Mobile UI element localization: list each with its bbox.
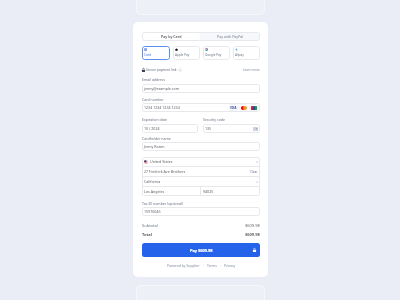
staticText: Jenny Rosen (144, 144, 165, 149)
staticText: Total (142, 232, 245, 237)
staticText: Alipay (235, 53, 244, 57)
button[interactable]: 10 / 2024 (142, 124, 198, 133)
staticText: · (217, 263, 224, 268)
staticText: 94025 (203, 189, 214, 194)
button[interactable]: Privacy (224, 263, 236, 268)
staticText: 135 (205, 126, 253, 131)
staticText: Tax ID number (optional) (142, 201, 183, 206)
staticText: 10 / 2024 (144, 126, 160, 131)
staticText: $609.98 (245, 223, 260, 228)
button[interactable]: Pay with PayPal (201, 32, 260, 41)
staticText: 15976046 (144, 209, 161, 214)
staticText: Google Pay (205, 53, 222, 57)
staticText: United States (150, 159, 256, 164)
staticText: VISA (230, 106, 237, 110)
staticText: Card number (142, 97, 164, 102)
button[interactable]: 27 Fredrick Ave Brothers (142, 167, 260, 176)
staticText: Pay $609.98 (190, 248, 213, 253)
staticText: Secure payment link (146, 68, 177, 72)
button[interactable]: Powered by Supplier (167, 263, 200, 268)
button[interactable]: Card (142, 46, 170, 60)
button[interactable]: 135 (203, 124, 260, 133)
staticText: Apple Pay (175, 53, 190, 57)
button[interactable]: Los Angeles (142, 187, 200, 196)
staticText: · (200, 263, 207, 268)
button[interactable]: Pay $609.98 (142, 243, 260, 257)
button[interactable]: 94025 (201, 187, 260, 196)
button[interactable]: Pay by Card (143, 33, 200, 40)
button[interactable]: Secure payment link (142, 68, 182, 72)
staticText: Expiration date (142, 117, 167, 122)
staticText: 1234 1234 1234 1234 (144, 105, 229, 110)
button[interactable]: Alipay (233, 46, 260, 60)
staticText: Subtotal (142, 223, 245, 228)
button[interactable]: Jenny Rosen (142, 142, 260, 151)
button[interactable]: 1234 1234 1234 1234 (142, 103, 260, 112)
button[interactable]: jenny@example.com (142, 84, 260, 93)
staticText: California (144, 179, 256, 184)
staticText: Pay by Card (161, 34, 182, 39)
staticText: Los Angeles (144, 189, 165, 194)
staticText: Security code (203, 117, 225, 122)
staticText: $609.98 (245, 232, 260, 237)
staticText: Cardholder name (142, 136, 171, 141)
button[interactable]: Learn more (243, 68, 260, 72)
button[interactable]: Apple Pay (173, 46, 200, 60)
staticText: Clear (250, 170, 258, 174)
staticText: 27 Fredrick Ave Brothers (144, 169, 250, 174)
staticText: jenny@example.com (144, 86, 180, 91)
button[interactable]: California (142, 177, 260, 186)
staticText: Card (144, 53, 151, 57)
button[interactable]: Terms (207, 263, 217, 268)
button[interactable]: United States (142, 157, 260, 166)
button[interactable]: 15976046 (142, 207, 260, 216)
staticText: Pay with PayPal (217, 34, 244, 39)
staticText: Email address (142, 77, 165, 82)
button[interactable]: Google Pay (203, 46, 230, 60)
